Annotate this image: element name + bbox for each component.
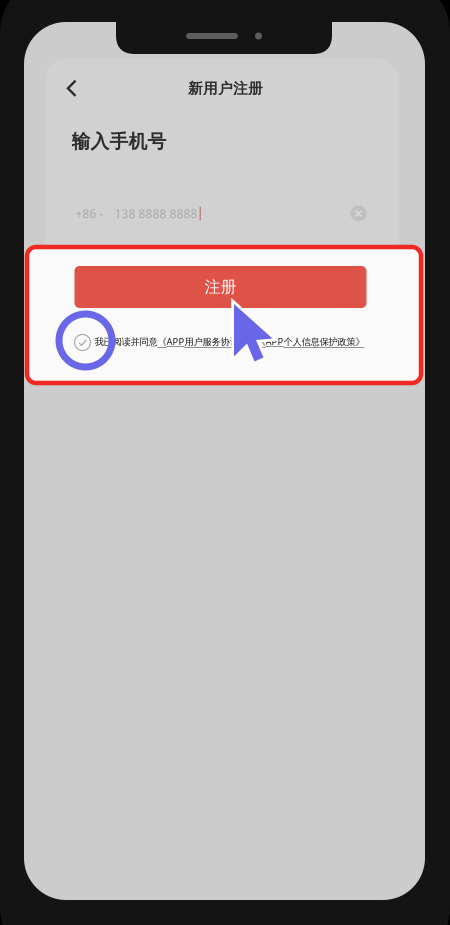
button[interactable]: Back bbox=[54, 71, 88, 105]
button[interactable]: Clear text bbox=[344, 199, 372, 227]
staticText: +86 - bbox=[75, 205, 103, 221]
staticText: 我已阅读并同意《APP用户服务协议》和《APP个人信息保护政策》 bbox=[94, 335, 364, 348]
staticText: 注册 bbox=[204, 277, 236, 297]
staticText: 新用户注册 bbox=[188, 79, 263, 97]
button[interactable]: 我已阅读并同意《APP用户服务协议》和《APP个人信息保护政策》 bbox=[94, 334, 384, 348]
staticText: 138 8888 8888 bbox=[114, 205, 197, 221]
button[interactable]: Agree to terms bbox=[68, 328, 96, 356]
staticText: 输入手机号 bbox=[71, 130, 166, 153]
button[interactable]: 注册 bbox=[74, 266, 366, 308]
